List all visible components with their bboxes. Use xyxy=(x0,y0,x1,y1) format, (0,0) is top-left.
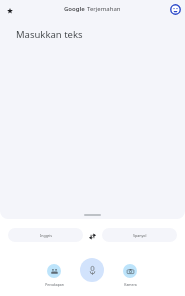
staticText: Masukkan teks xyxy=(16,28,83,41)
button[interactable]: Saved translations xyxy=(0,0,19,19)
button[interactable]: Microphone xyxy=(80,258,104,282)
button[interactable]: Swap languages xyxy=(83,228,102,242)
staticText: Inggris xyxy=(40,233,52,238)
button[interactable]: Masukkan teks xyxy=(0,19,185,209)
staticText: Kamera xyxy=(124,282,137,287)
button[interactable]: Account xyxy=(166,0,185,19)
staticText: Terjemahan xyxy=(87,5,121,13)
button[interactable]: Percakapan xyxy=(32,264,76,287)
button[interactable]: Inggris xyxy=(8,228,83,242)
staticText: Spanyol xyxy=(133,233,147,238)
staticText: Percakapan xyxy=(45,282,64,287)
button[interactable]: Kamera xyxy=(108,264,152,287)
button[interactable]: Spanyol xyxy=(102,228,177,242)
staticText: Google xyxy=(64,5,85,13)
